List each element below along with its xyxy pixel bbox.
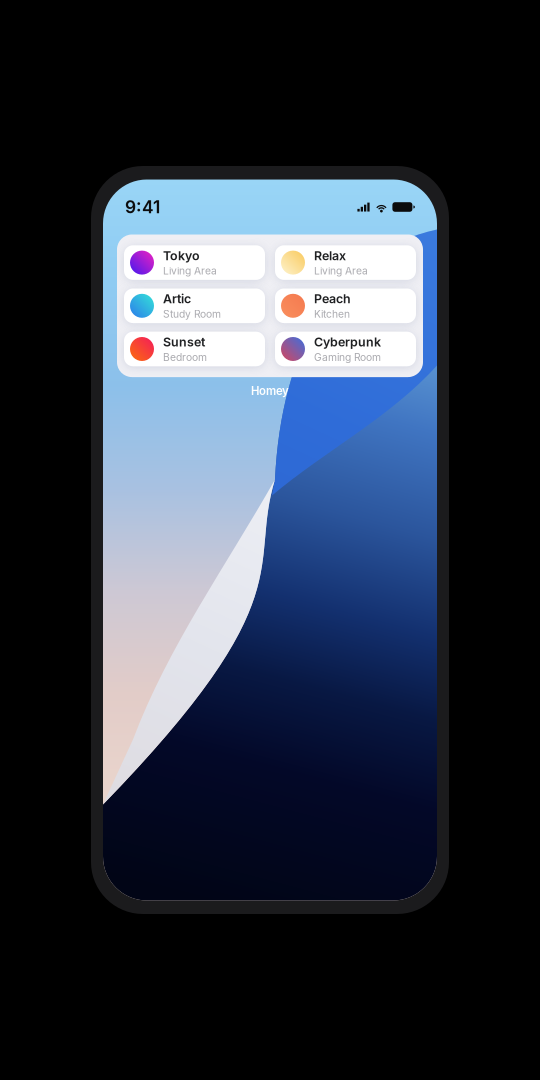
button[interactable]: Artic: [124, 288, 265, 323]
staticText: Study Room: [163, 308, 221, 320]
staticText: Relax: [314, 248, 346, 263]
button[interactable]: Relax: [275, 245, 416, 280]
button[interactable]: Sunset: [124, 332, 265, 366]
staticText: Kitchen: [314, 308, 350, 320]
staticText: Homey: [251, 384, 289, 398]
staticText: Tokyo: [163, 248, 200, 263]
button[interactable]: Peach: [275, 288, 416, 323]
button[interactable]: Tokyo: [124, 245, 265, 280]
staticText: Artic: [163, 291, 191, 306]
staticText: Cyberpunk: [314, 334, 381, 349]
staticText: Peach: [314, 291, 351, 306]
staticText: Living Area: [314, 265, 368, 277]
staticText: Bedroom: [163, 351, 207, 363]
staticText: 9:41: [125, 196, 160, 217]
staticText: Gaming Room: [314, 351, 381, 363]
staticText: Living Area: [163, 265, 217, 277]
staticText: Sunset: [163, 334, 205, 349]
button[interactable]: Cyberpunk: [275, 332, 416, 366]
